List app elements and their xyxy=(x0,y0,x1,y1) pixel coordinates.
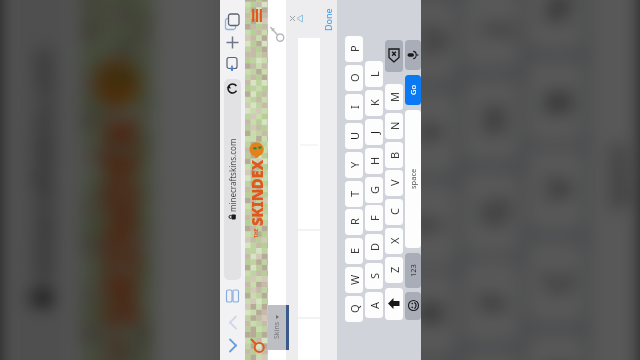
button[interactable]: E xyxy=(345,238,363,264)
button[interactable]: C xyxy=(385,199,403,225)
button[interactable]: Forward xyxy=(228,338,238,353)
staticText: G xyxy=(469,196,517,225)
staticText: Skins xyxy=(272,321,282,339)
button[interactable]: K xyxy=(365,90,383,116)
button[interactable]: Tabs xyxy=(225,13,240,30)
button[interactable]: Go xyxy=(405,75,421,105)
staticText: P xyxy=(347,45,362,52)
staticText: space xyxy=(408,168,418,189)
button[interactable]: J xyxy=(365,119,383,145)
button[interactable]: space xyxy=(590,0,640,360)
button[interactable]: Bookmarks xyxy=(226,289,239,303)
button[interactable]: G xyxy=(365,177,383,203)
staticText: SKINDEX xyxy=(87,114,151,327)
button[interactable]: B xyxy=(526,59,584,142)
staticText: F xyxy=(469,292,517,311)
staticText: V xyxy=(533,177,581,200)
staticText: Done xyxy=(322,8,334,31)
button[interactable]: R xyxy=(345,209,363,235)
button[interactable]: Menu xyxy=(252,9,262,22)
staticText: minecraftskins.com xyxy=(23,47,58,282)
staticText: space xyxy=(600,142,631,209)
button[interactable]: G xyxy=(463,171,520,254)
staticText: X xyxy=(387,237,402,244)
button[interactable]: O xyxy=(345,65,363,91)
button[interactable]: T xyxy=(345,181,363,207)
button[interactable]: M xyxy=(385,84,403,110)
staticText: Q xyxy=(347,304,362,313)
staticText: H xyxy=(469,104,517,133)
button[interactable]: Back xyxy=(228,315,238,330)
button[interactable]: V xyxy=(385,170,403,196)
staticText: SKINDEX xyxy=(247,159,267,226)
button[interactable]: H xyxy=(365,148,383,174)
staticText: G xyxy=(367,185,382,194)
button[interactable]: Q xyxy=(345,296,363,322)
button[interactable]: U xyxy=(345,123,363,149)
button[interactable]: space xyxy=(405,110,421,248)
button[interactable]: Passwords xyxy=(270,25,285,42)
button[interactable]: F xyxy=(463,260,520,343)
button[interactable] xyxy=(385,40,403,72)
button[interactable]: T xyxy=(399,184,456,266)
button[interactable] xyxy=(405,292,421,320)
button[interactable]: D xyxy=(365,234,383,260)
button[interactable]: 123 xyxy=(405,253,421,288)
staticText: I xyxy=(347,105,362,109)
button[interactable]: S xyxy=(365,263,383,289)
staticText: J xyxy=(367,130,382,134)
staticText: M xyxy=(387,92,402,102)
button[interactable]: B xyxy=(385,142,403,168)
button[interactable]: Sidebar xyxy=(226,56,239,71)
button[interactable]: I xyxy=(345,94,363,120)
button[interactable]: H xyxy=(463,79,520,161)
staticText: D xyxy=(367,242,382,251)
staticText: C xyxy=(387,208,402,215)
button[interactable]: Y xyxy=(399,91,456,174)
staticText: E xyxy=(347,247,362,254)
button[interactable]: Y xyxy=(345,152,363,178)
button[interactable]: A xyxy=(365,292,383,318)
button[interactable]: minecraftskins.com xyxy=(14,0,68,360)
staticText: N xyxy=(533,0,581,21)
staticText: Y xyxy=(405,120,453,142)
button[interactable]: New tab xyxy=(226,36,239,49)
staticText: L xyxy=(367,71,382,77)
button[interactable] xyxy=(405,40,421,70)
staticText: Go xyxy=(408,85,418,95)
button[interactable]: N xyxy=(385,113,403,139)
staticText: K xyxy=(367,99,382,106)
button[interactable]: X xyxy=(385,228,403,254)
button[interactable]: minecraftskins.com xyxy=(224,79,241,280)
button[interactable]: L xyxy=(365,61,383,87)
staticText: B xyxy=(387,151,402,159)
button[interactable]: N xyxy=(526,0,584,50)
staticText: T xyxy=(405,212,453,235)
staticText: minecraftskins.com xyxy=(227,138,238,212)
button[interactable] xyxy=(385,288,403,320)
staticText: 123 xyxy=(408,264,418,277)
staticText: H xyxy=(367,156,382,165)
button[interactable]: Z xyxy=(385,257,403,283)
staticText: THE xyxy=(253,228,260,238)
staticText: U xyxy=(347,131,362,140)
staticText: U xyxy=(405,24,453,53)
button[interactable]: W xyxy=(345,267,363,293)
staticText: V xyxy=(387,179,402,186)
staticText: W xyxy=(347,274,362,285)
button[interactable]: V xyxy=(526,149,584,231)
staticText: F xyxy=(367,215,382,221)
button[interactable]: R xyxy=(399,273,456,356)
button[interactable]: F xyxy=(365,205,383,231)
staticText: Z xyxy=(387,266,402,273)
staticText: T xyxy=(347,190,362,197)
button[interactable]: Done xyxy=(322,7,334,33)
button[interactable]: P xyxy=(345,36,363,62)
button[interactable]: Search xyxy=(250,338,265,353)
button[interactable]: U xyxy=(399,0,456,82)
